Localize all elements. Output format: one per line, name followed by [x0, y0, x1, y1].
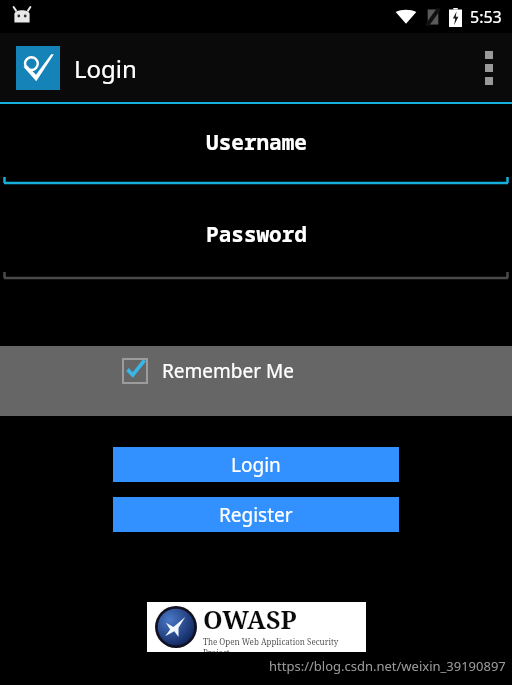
staticText: The Open Web Application Security Projec… — [203, 636, 366, 652]
staticText: https://blog.csdn.net/weixin_39190897 — [269, 657, 506, 675]
staticText: 5:53 — [470, 6, 502, 28]
button[interactable]: Password — [0, 198, 512, 295]
staticText: Login — [74, 52, 137, 85]
button[interactable]: Remember Me — [0, 346, 512, 416]
staticText: OWASP — [203, 602, 297, 636]
button[interactable]: More options — [466, 33, 512, 102]
button[interactable]: Login — [113, 447, 399, 482]
button[interactable]: App icon — [16, 46, 60, 90]
staticText: Register — [219, 502, 293, 528]
staticText: Username — [206, 128, 307, 157]
button[interactable]: OWASP logo — [147, 602, 366, 652]
button[interactable]: Register — [113, 497, 399, 532]
staticText: Login — [231, 452, 281, 478]
staticText: Remember Me — [162, 358, 294, 384]
staticText: Password — [206, 220, 307, 249]
button[interactable]: Username — [0, 104, 512, 198]
